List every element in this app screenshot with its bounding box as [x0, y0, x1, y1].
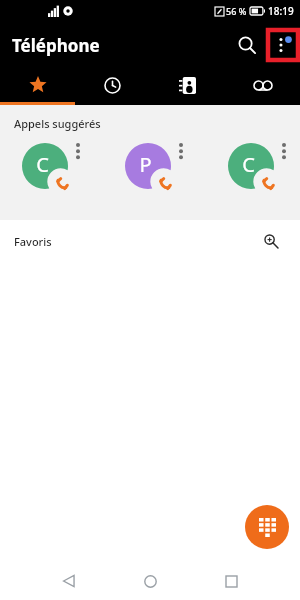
button[interactable]: Favoris: [0, 68, 75, 102]
button[interactable]: C: [228, 143, 274, 189]
button[interactable]: Retour: [52, 564, 86, 598]
staticText: Favoris: [14, 234, 52, 249]
button[interactable]: Applications récentes: [214, 564, 248, 598]
staticText: Téléphone: [12, 34, 100, 57]
button[interactable]: Rechercher: [228, 26, 266, 64]
staticText: P: [139, 151, 152, 178]
button[interactable]: Récents: [75, 68, 150, 102]
button[interactable]: Plus d'options: [266, 28, 300, 62]
button[interactable]: C: [22, 143, 68, 189]
button[interactable]: P: [125, 143, 171, 189]
button[interactable]: Clavier: [245, 505, 289, 549]
staticText: 18:19: [268, 4, 294, 18]
button[interactable]: Options du contact: [277, 143, 291, 173]
staticText: C: [36, 151, 49, 178]
button[interactable]: Accueil: [133, 564, 167, 598]
button[interactable]: Options du contact: [71, 143, 85, 173]
staticText: C: [242, 151, 255, 178]
staticText: 56 %: [226, 5, 247, 17]
staticText: Appels suggérés: [14, 116, 101, 131]
button[interactable]: Options du contact: [174, 143, 188, 173]
button[interactable]: Contacts: [150, 68, 225, 102]
button[interactable]: Messagerie: [225, 68, 300, 102]
button[interactable]: Agrandir: [258, 228, 284, 254]
